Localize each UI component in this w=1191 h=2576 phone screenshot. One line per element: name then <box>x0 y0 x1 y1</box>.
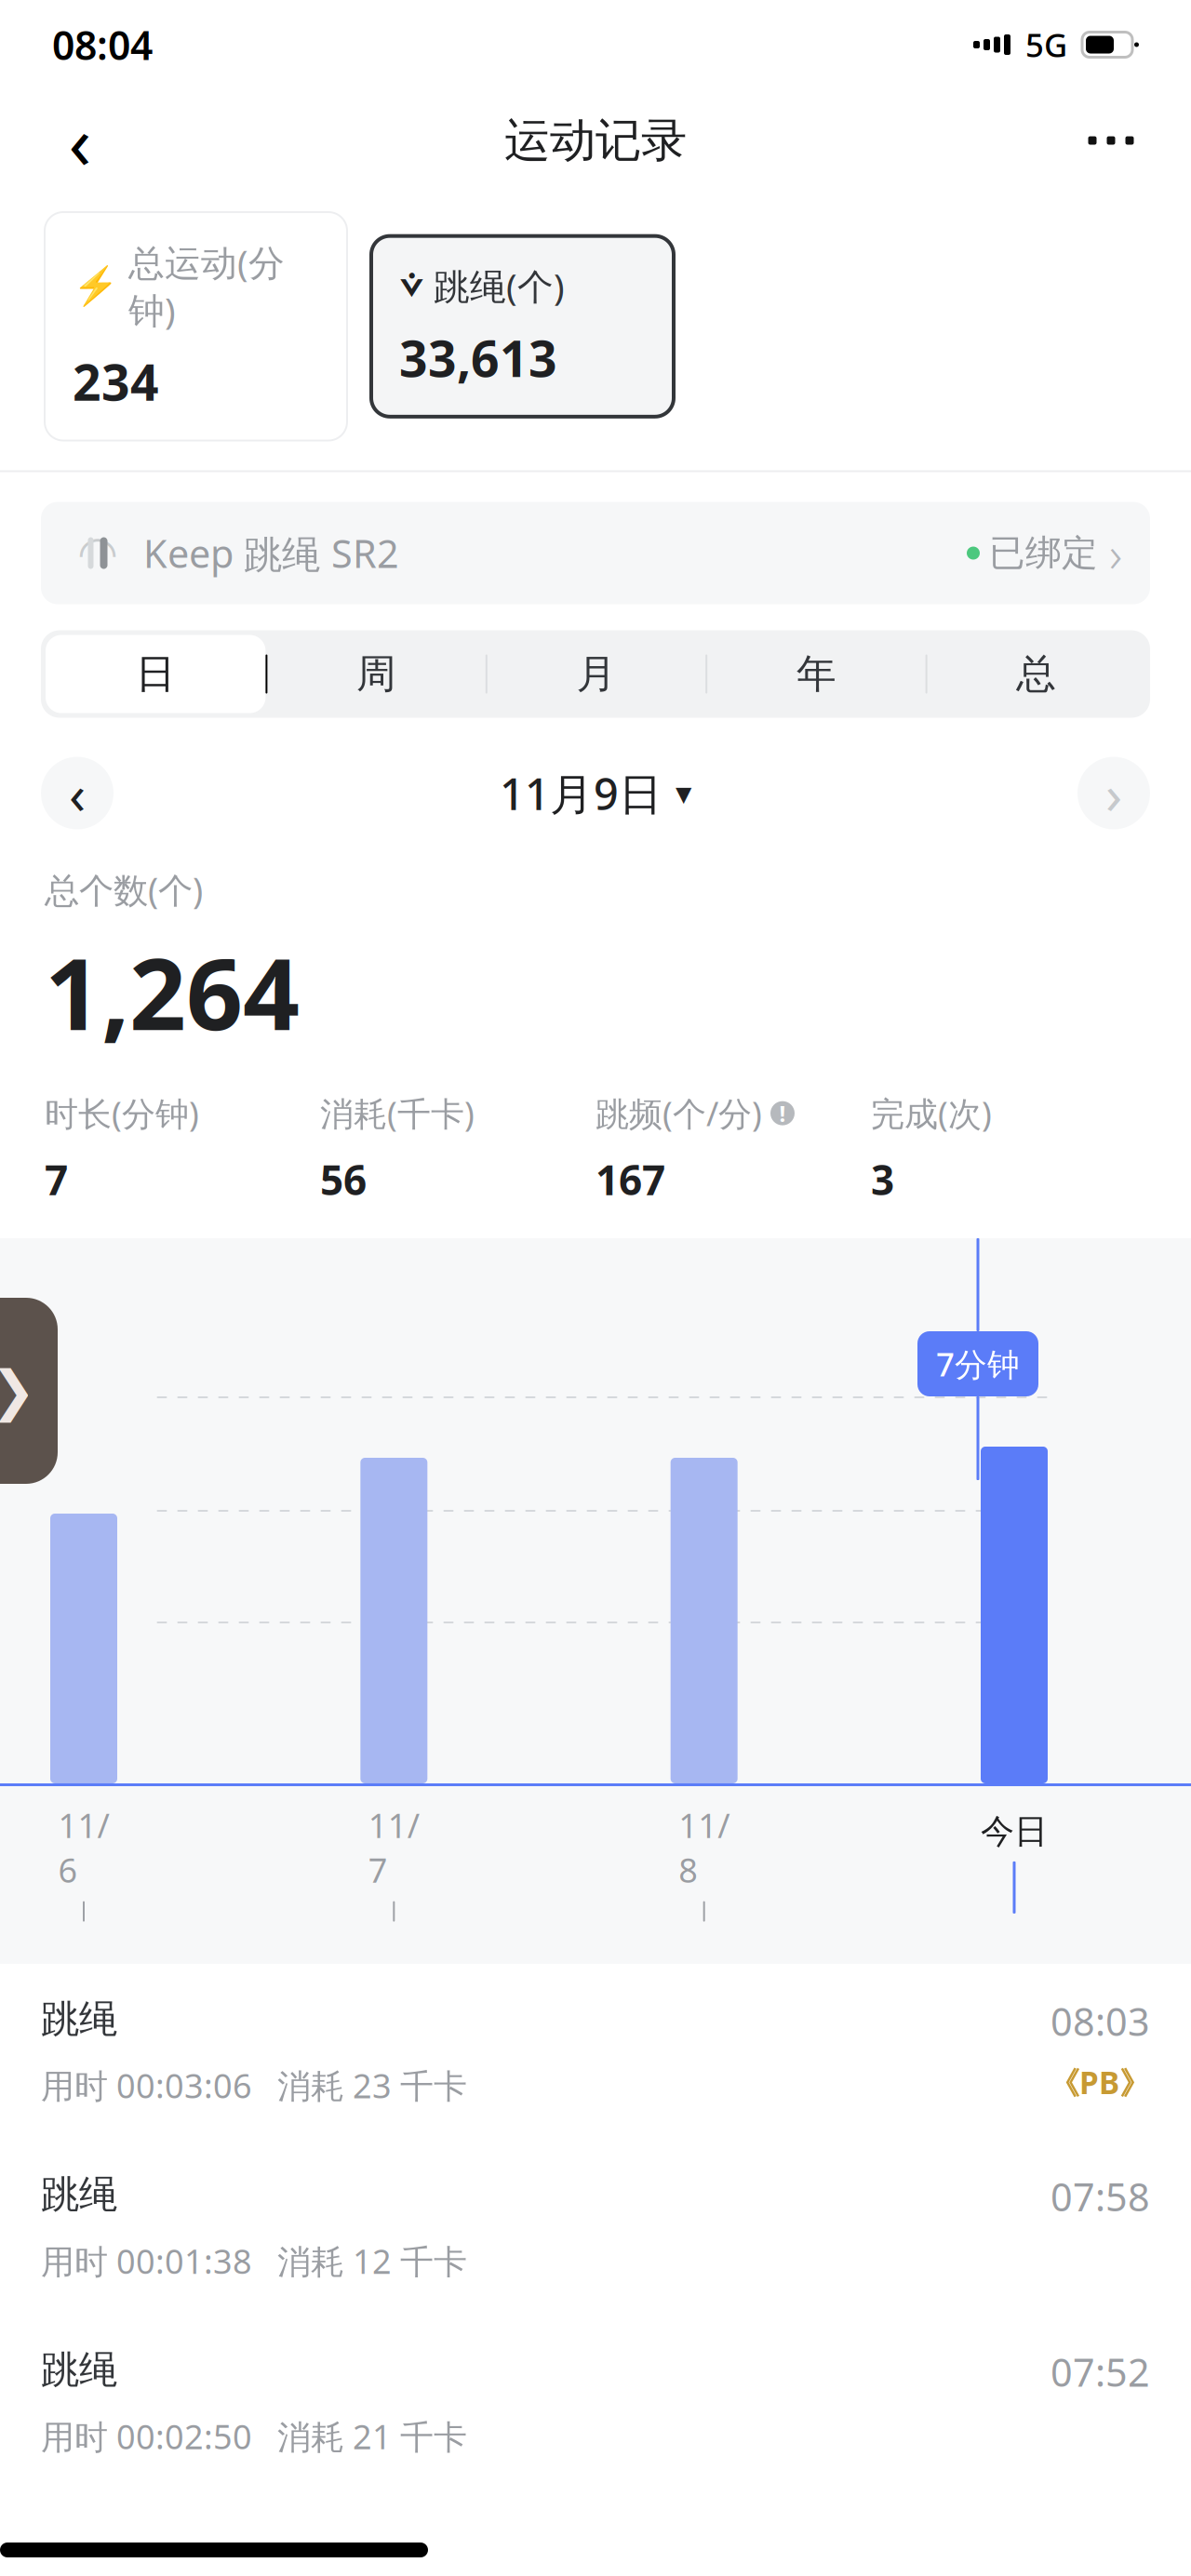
staticText: 日 <box>136 650 176 698</box>
staticText: 时长(分钟) <box>45 1091 199 1135</box>
staticText: ◠ <box>77 526 118 580</box>
staticText: 周 <box>356 650 396 698</box>
staticText: Keep 跳绳 SR2 <box>143 527 399 579</box>
staticText: › <box>1109 520 1122 586</box>
staticText: 完成(次) <box>871 1091 992 1135</box>
staticText: 08:03 <box>1050 1995 1150 2047</box>
button[interactable]: 年 <box>707 635 925 713</box>
button[interactable]: 跳绳 <box>0 1964 1191 2139</box>
staticText: 月 <box>576 650 616 698</box>
staticText: 用时 00:03:06 消耗 23 千卡 <box>41 2063 467 2108</box>
button[interactable]: 展开侧栏 <box>0 1298 58 1484</box>
staticText: 消耗(千卡) <box>320 1091 475 1135</box>
staticText: 56 <box>320 1152 367 1207</box>
button[interactable]: 上一天 <box>41 757 114 829</box>
staticText: 跳绳 <box>41 2171 117 2218</box>
staticText: 07:58 <box>1050 2171 1150 2222</box>
staticText: 总个数(个) <box>45 867 203 913</box>
staticText: 234 <box>73 349 159 414</box>
button[interactable]: ⩒ <box>371 236 674 417</box>
staticText: 跳频(个/分) <box>595 1091 762 1135</box>
staticText: 总运动(分钟) <box>128 238 285 334</box>
staticText: ❯ <box>0 1360 36 1422</box>
staticText: 跳绳(个) <box>434 262 565 310</box>
staticText: 07:52 <box>1050 2346 1150 2397</box>
button[interactable]: 跳绳 <box>0 2315 1191 2490</box>
button[interactable]: ⚡ <box>45 212 347 440</box>
staticText: 11/8 <box>678 1803 730 1892</box>
staticText: › <box>1105 757 1122 829</box>
staticText: 11/7 <box>368 1803 419 1892</box>
staticText: 1,264 <box>45 926 300 1057</box>
staticText: 11/6 <box>58 1803 109 1892</box>
staticText: ⩒ <box>399 268 424 304</box>
staticText: 08:04 <box>52 18 153 71</box>
staticText: ▾ <box>676 775 691 811</box>
button[interactable]: 跳绳 <box>0 2139 1191 2315</box>
button[interactable]: 日 <box>46 635 266 713</box>
staticText: 7分钟 <box>936 1342 1020 1385</box>
staticText: ! <box>779 1098 786 1128</box>
staticText: ‹ <box>69 757 86 829</box>
staticText: 已绑定 <box>989 531 1098 575</box>
staticText: 5G <box>1025 23 1067 66</box>
staticText: 跳绳 <box>41 2346 117 2394</box>
button[interactable]: 月 <box>487 635 705 713</box>
staticText: 7 <box>45 1152 68 1207</box>
staticText: 年 <box>796 650 836 698</box>
staticText: 11月9日 <box>500 764 662 822</box>
staticText: ‹ <box>68 91 92 190</box>
staticText: ⚡ <box>73 265 119 307</box>
button[interactable]: 返回 <box>41 101 119 180</box>
staticText: 总 <box>1016 650 1056 698</box>
staticText: 《PB》 <box>1049 2061 1150 2103</box>
staticText: 今日 <box>981 1811 1048 1852</box>
staticText: 用时 00:02:50 消耗 21 千卡 <box>41 2414 467 2459</box>
staticText: 33,613 <box>399 325 557 391</box>
button[interactable]: 周 <box>267 635 486 713</box>
button[interactable]: ◠ <box>41 502 1150 604</box>
button[interactable]: 总 <box>927 635 1145 713</box>
staticText: 运动记录 <box>504 112 687 169</box>
button[interactable]: 下一天 <box>1077 757 1150 829</box>
staticText: 3 <box>871 1152 894 1207</box>
staticText: 跳绳 <box>41 1995 117 2043</box>
button[interactable]: 更多 <box>1072 101 1150 180</box>
button[interactable]: 11月9日 <box>500 764 691 822</box>
staticText: 用时 00:01:38 消耗 12 千卡 <box>41 2239 467 2283</box>
staticText: 167 <box>595 1152 665 1207</box>
